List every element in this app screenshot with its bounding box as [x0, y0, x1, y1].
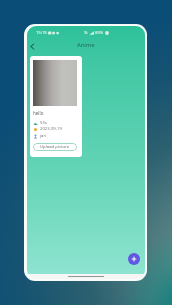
staticText: % — [84, 30, 88, 36]
button[interactable]: Upload picture — [33, 143, 77, 151]
staticText: jan — [40, 133, 47, 139]
staticText: hello — [33, 110, 44, 116]
staticText: Upload picture — [40, 144, 70, 150]
button[interactable]: Back — [27, 41, 38, 52]
staticText: 2023-09-19 — [40, 126, 62, 132]
staticText: 85% — [95, 30, 104, 36]
staticText: 55s — [40, 120, 47, 126]
staticText: 15:15 — [36, 30, 47, 36]
button[interactable]: Add — [128, 253, 140, 265]
staticText: Anime — [77, 41, 95, 49]
